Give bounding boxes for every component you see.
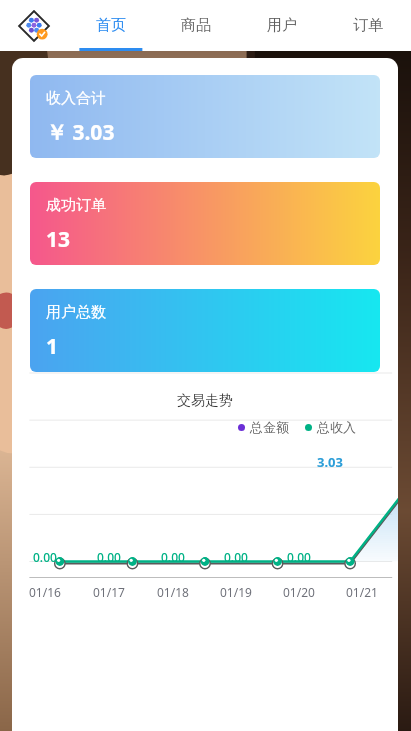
button[interactable]: 用户总数: [30, 289, 380, 372]
button[interactable]: 订单: [325, 0, 411, 51]
staticText: 01/19: [220, 584, 252, 600]
button[interactable]: 总金额: [238, 419, 289, 435]
staticText: 商品: [181, 16, 211, 35]
button[interactable]: Logo: [0, 0, 68, 51]
staticText: 0.00: [161, 549, 185, 565]
staticText: ￥ 3.03: [46, 118, 115, 147]
staticText: 01/16: [29, 584, 61, 600]
staticText: 订单: [353, 16, 383, 35]
staticText: 13: [46, 225, 71, 254]
staticText: 0.00: [97, 549, 121, 565]
staticText: 01/17: [93, 584, 125, 600]
staticText: 首页: [96, 16, 126, 35]
button[interactable]: 首页: [68, 0, 153, 51]
staticText: 成功订单: [46, 196, 106, 215]
staticText: 收入合计: [46, 89, 106, 108]
staticText: 01/21: [346, 584, 378, 600]
staticText: 总金额: [250, 419, 289, 435]
staticText: 01/20: [283, 584, 315, 600]
staticText: 交易走势: [177, 392, 233, 410]
staticText: 用户总数: [46, 303, 106, 322]
button[interactable]: 总收入: [305, 419, 356, 435]
button[interactable]: 成功订单: [30, 182, 380, 265]
staticText: 总收入: [317, 419, 356, 435]
button[interactable]: 收入合计: [30, 75, 380, 158]
other: App logo: [17, 9, 51, 43]
staticText: 0.00: [224, 549, 248, 565]
button[interactable]: 商品: [153, 0, 239, 51]
button[interactable]: 用户: [239, 0, 325, 51]
staticText: 0.00: [287, 549, 311, 565]
staticText: 01/18: [157, 584, 189, 600]
staticText: 3.03: [317, 453, 343, 471]
staticText: 用户: [267, 16, 297, 35]
staticText: 0.00: [33, 549, 57, 565]
staticText: 1: [46, 332, 59, 361]
